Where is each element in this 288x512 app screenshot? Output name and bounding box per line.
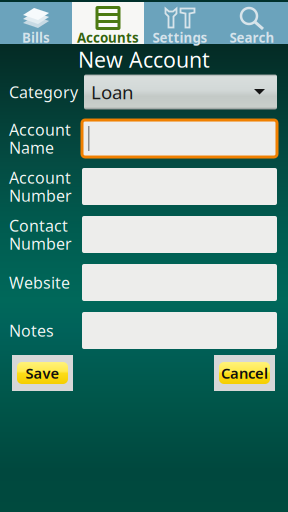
button[interactable]: Search xyxy=(216,2,288,44)
staticText: Contact xyxy=(9,215,68,236)
staticText: Number xyxy=(9,185,72,206)
staticText: Cancel xyxy=(221,363,268,383)
staticText: Search xyxy=(229,29,274,46)
staticText: Account xyxy=(9,167,71,188)
button[interactable]: Settings xyxy=(144,2,216,44)
staticText: Bills xyxy=(22,29,50,46)
button[interactable]: Bills xyxy=(0,2,72,44)
staticText: Website xyxy=(9,272,70,293)
staticText: Account xyxy=(9,119,71,140)
staticText: Loan xyxy=(91,80,134,104)
staticText: Save xyxy=(25,363,59,383)
staticText: Number xyxy=(9,233,72,254)
staticText: New Account xyxy=(78,45,210,74)
button[interactable]: Accounts xyxy=(72,2,144,44)
staticText: Settings xyxy=(152,29,207,46)
button[interactable]: Loan xyxy=(84,74,277,109)
button[interactable]: Cancel xyxy=(214,355,275,391)
staticText: Accounts xyxy=(77,29,139,46)
staticText: Name xyxy=(9,137,54,158)
staticText: Notes xyxy=(9,320,54,341)
button[interactable]: Save xyxy=(12,355,73,391)
staticText: Category xyxy=(9,81,78,103)
